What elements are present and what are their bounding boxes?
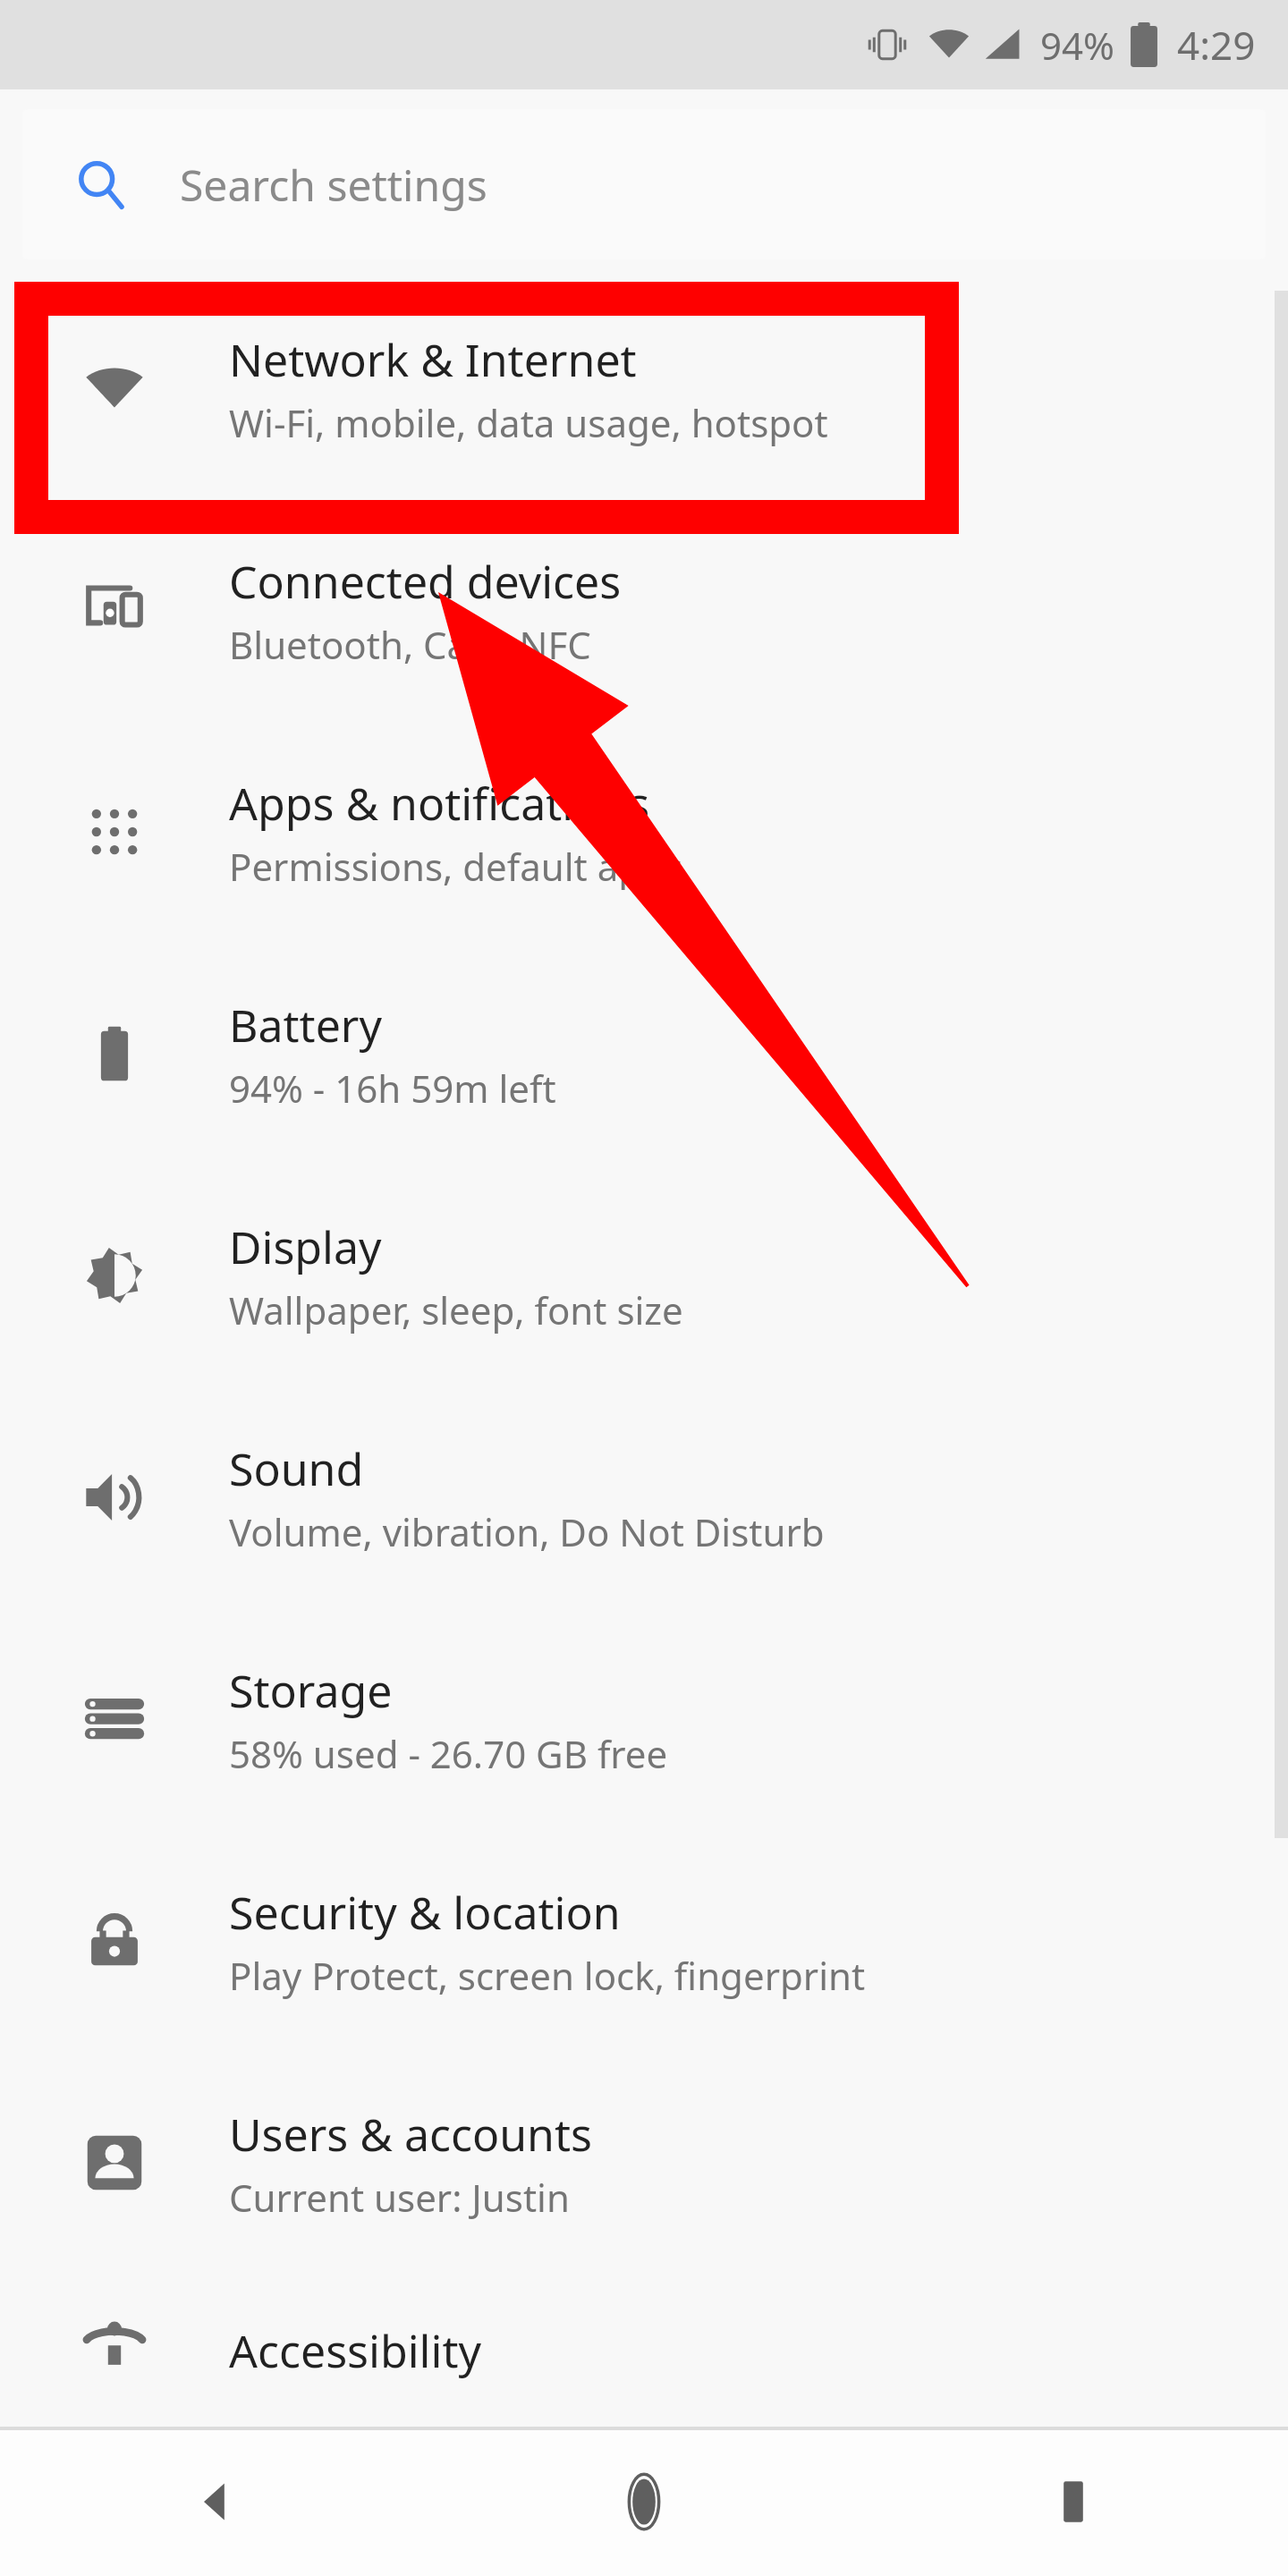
button[interactable]: Accessibility	[0, 2274, 1288, 2427]
button[interactable]: Battery	[0, 943, 1288, 1165]
button[interactable]: Apps & notifications	[0, 721, 1288, 943]
staticText: Apps & notifications	[229, 773, 650, 834]
button[interactable]: Security & location	[0, 1830, 1288, 2052]
staticText: Current user: Justin	[229, 2172, 570, 2223]
button[interactable]: Recent apps	[859, 2427, 1288, 2576]
staticText: 58% used - 26.70 GB free	[229, 1728, 668, 1779]
staticText: Volume, vibration, Do Not Disturb	[229, 1506, 825, 1557]
staticText: Wi-Fi, mobile, data usage, hotspot	[229, 397, 828, 448]
staticText: 94% - 16h 59m left	[229, 1063, 556, 1114]
staticText: Users & accounts	[229, 2104, 592, 2165]
button[interactable]: Storage	[0, 1608, 1288, 1830]
staticText: Storage	[229, 1660, 393, 1721]
button[interactable]: Home	[429, 2427, 859, 2576]
button[interactable]: Network & Internet	[0, 277, 1288, 499]
staticText: Permissions, default apps	[229, 841, 683, 892]
button[interactable]: Search settings	[22, 109, 1266, 259]
staticText: Display	[229, 1216, 382, 1277]
button[interactable]: Users & accounts	[0, 2052, 1288, 2274]
button[interactable]: Sound	[0, 1386, 1288, 1608]
button[interactable]: Connected devices	[0, 499, 1288, 721]
button[interactable]: Display	[0, 1165, 1288, 1386]
staticText: 94%	[1040, 20, 1114, 71]
staticText: Connected devices	[229, 551, 622, 612]
staticText: Accessibility	[229, 2320, 481, 2381]
staticText: Battery	[229, 995, 382, 1055]
staticText: Wallpaper, sleep, font size	[229, 1284, 683, 1335]
button[interactable]: Back	[0, 2427, 429, 2576]
staticText: Network & Internet	[229, 329, 637, 390]
staticText: 4:29	[1177, 18, 1256, 72]
staticText: Bluetooth, Cast, NFC	[229, 619, 591, 670]
staticText: Search settings	[180, 156, 487, 214]
staticText: Play Protect, screen lock, fingerprint	[229, 1950, 866, 2001]
staticText: Security & location	[229, 1882, 621, 1943]
staticText: Sound	[229, 1438, 364, 1499]
